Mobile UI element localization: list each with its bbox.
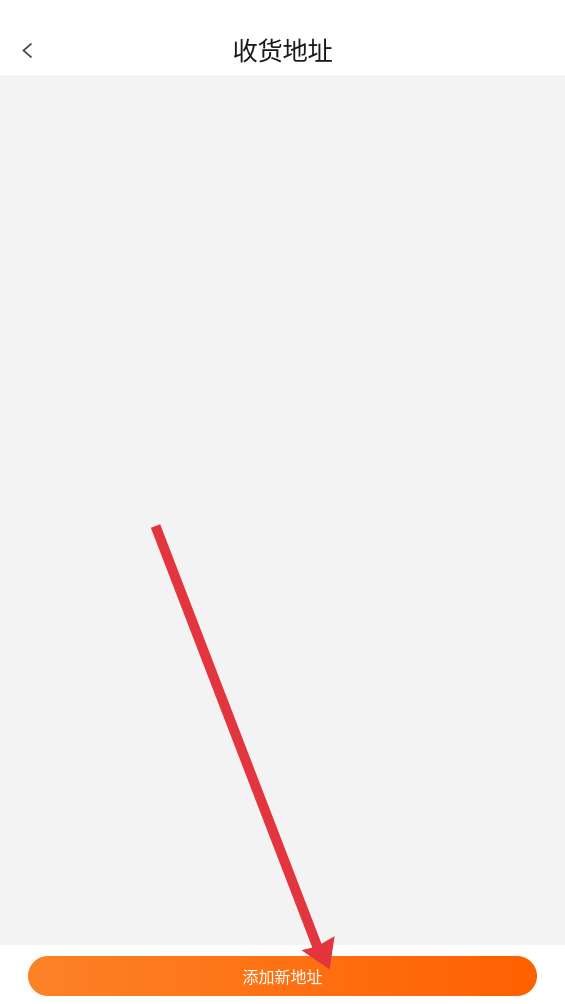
staticText: 添加新地址 [242, 964, 322, 988]
button[interactable]: 添加新地址 [28, 956, 537, 996]
button[interactable]: Back [6, 25, 50, 73]
staticText: 收货地址 [232, 31, 332, 67]
